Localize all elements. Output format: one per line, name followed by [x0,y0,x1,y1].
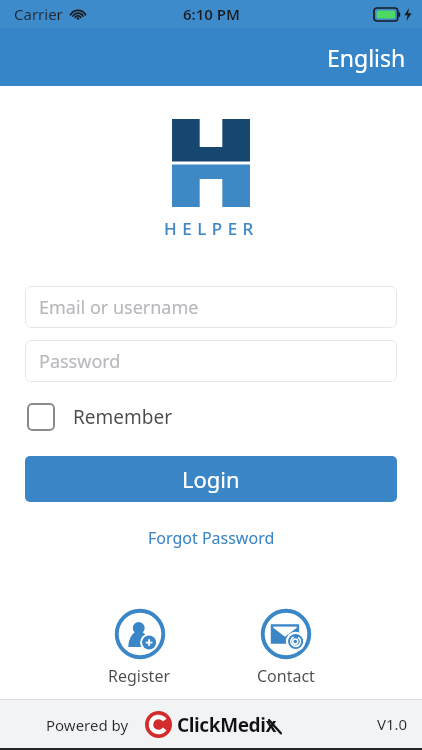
button[interactable]: Forgot Password [136,523,287,553]
button[interactable]: Login [25,456,397,502]
staticText: Login [182,464,240,494]
staticText: English [327,42,406,73]
button[interactable]: Remember [25,399,175,435]
staticText: V1.0 [377,714,408,734]
staticText: Password [39,349,121,374]
staticText: Contact [257,665,315,687]
staticText: 6:10 PM [183,4,240,24]
staticText: ClickMedix [177,712,277,738]
button[interactable]: Password [25,340,397,382]
button[interactable]: English [311,34,422,81]
staticText: HELPER [164,217,259,240]
staticText: Carrier [14,4,63,24]
staticText: Email or username [39,295,199,320]
staticText: Powered by [46,715,129,735]
button[interactable]: Email or username [25,286,397,328]
staticText: Remember [73,404,173,430]
button[interactable]: Contact [249,606,323,689]
button[interactable]: Register [100,606,179,689]
staticText: Register [108,665,171,687]
staticText: Forgot Password [148,527,275,549]
